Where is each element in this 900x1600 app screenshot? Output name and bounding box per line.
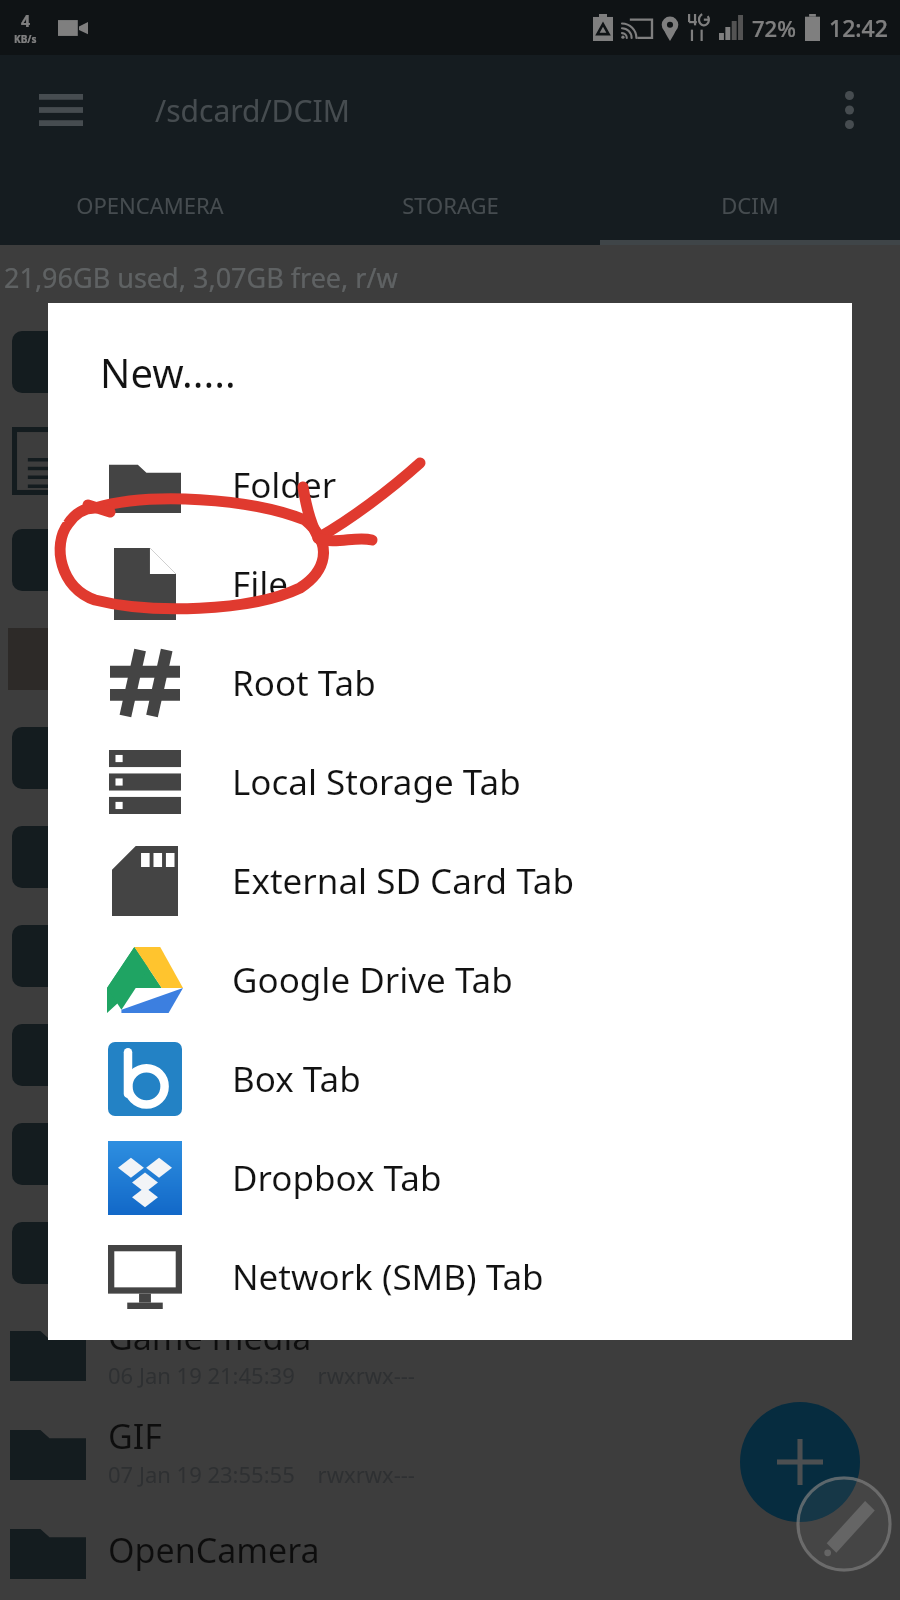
button[interactable] bbox=[0, 312, 900, 411]
button[interactable]: OPENCAMERA bbox=[0, 165, 300, 245]
button[interactable] bbox=[0, 1005, 900, 1104]
staticText: /sdcard/DCIM bbox=[155, 90, 350, 131]
button[interactable]: More options bbox=[818, 79, 880, 141]
staticText: 4 bbox=[21, 10, 31, 32]
staticText: DCIM bbox=[721, 190, 779, 220]
button[interactable]: GIF bbox=[0, 1401, 900, 1500]
staticText: Game media bbox=[108, 1314, 312, 1360]
button[interactable]: Game media bbox=[0, 1302, 900, 1401]
staticText: 21,96GB used, 3,07GB free, r/w bbox=[4, 259, 398, 296]
button[interactable]: Root Tab bbox=[48, 633, 852, 732]
staticText: KB/s bbox=[14, 32, 37, 46]
staticText: Dropbox Tab bbox=[232, 1154, 442, 1202]
button[interactable]: File bbox=[48, 534, 852, 633]
button[interactable]: DCIM bbox=[600, 165, 900, 245]
button[interactable]: Local Storage Tab bbox=[48, 732, 852, 831]
button[interactable]: Box Tab bbox=[48, 1029, 852, 1128]
staticText: 12:42 bbox=[829, 12, 888, 43]
button[interactable]: Open navigation drawer bbox=[28, 77, 94, 143]
button[interactable]: STORAGE bbox=[300, 165, 600, 245]
button[interactable] bbox=[0, 609, 900, 708]
button[interactable] bbox=[0, 510, 900, 609]
staticText: GIF bbox=[108, 1413, 162, 1459]
staticText: Network (SMB) Tab bbox=[232, 1253, 544, 1301]
button[interactable] bbox=[0, 1104, 900, 1203]
staticText: External SD Card Tab bbox=[232, 857, 575, 905]
button[interactable] bbox=[0, 807, 900, 906]
staticText: 06 Jan 19 21:45:39 rwxrwx--- bbox=[108, 1360, 415, 1390]
staticText: New..... bbox=[100, 345, 236, 399]
button[interactable]: Google Drive Tab bbox=[48, 930, 852, 1029]
button[interactable] bbox=[0, 906, 900, 1005]
staticText: 72% bbox=[752, 13, 796, 43]
button[interactable] bbox=[0, 411, 900, 510]
staticText: STORAGE bbox=[402, 190, 499, 220]
button[interactable] bbox=[0, 1203, 900, 1302]
staticText: OpenCamera bbox=[108, 1527, 320, 1573]
staticText: File bbox=[232, 560, 288, 608]
button[interactable] bbox=[0, 708, 900, 807]
button[interactable]: External SD Card Tab bbox=[48, 831, 852, 930]
staticText: Folder bbox=[232, 461, 337, 509]
staticText: Box Tab bbox=[232, 1055, 361, 1103]
button[interactable]: Dropbox Tab bbox=[48, 1128, 852, 1227]
staticText: Google Drive Tab bbox=[232, 956, 513, 1004]
button[interactable]: Edit bbox=[796, 1476, 892, 1572]
button[interactable]: Folder bbox=[48, 435, 852, 534]
staticText: Root Tab bbox=[232, 659, 376, 707]
staticText: 07 Jan 19 23:55:55 rwxrwx--- bbox=[108, 1459, 415, 1489]
button[interactable]: Network (SMB) Tab bbox=[48, 1227, 852, 1326]
button[interactable]: Create new bbox=[740, 1402, 860, 1522]
staticText: OPENCAMERA bbox=[76, 190, 224, 220]
staticText: Local Storage Tab bbox=[232, 758, 521, 806]
button[interactable]: OpenCamera bbox=[0, 1500, 900, 1599]
